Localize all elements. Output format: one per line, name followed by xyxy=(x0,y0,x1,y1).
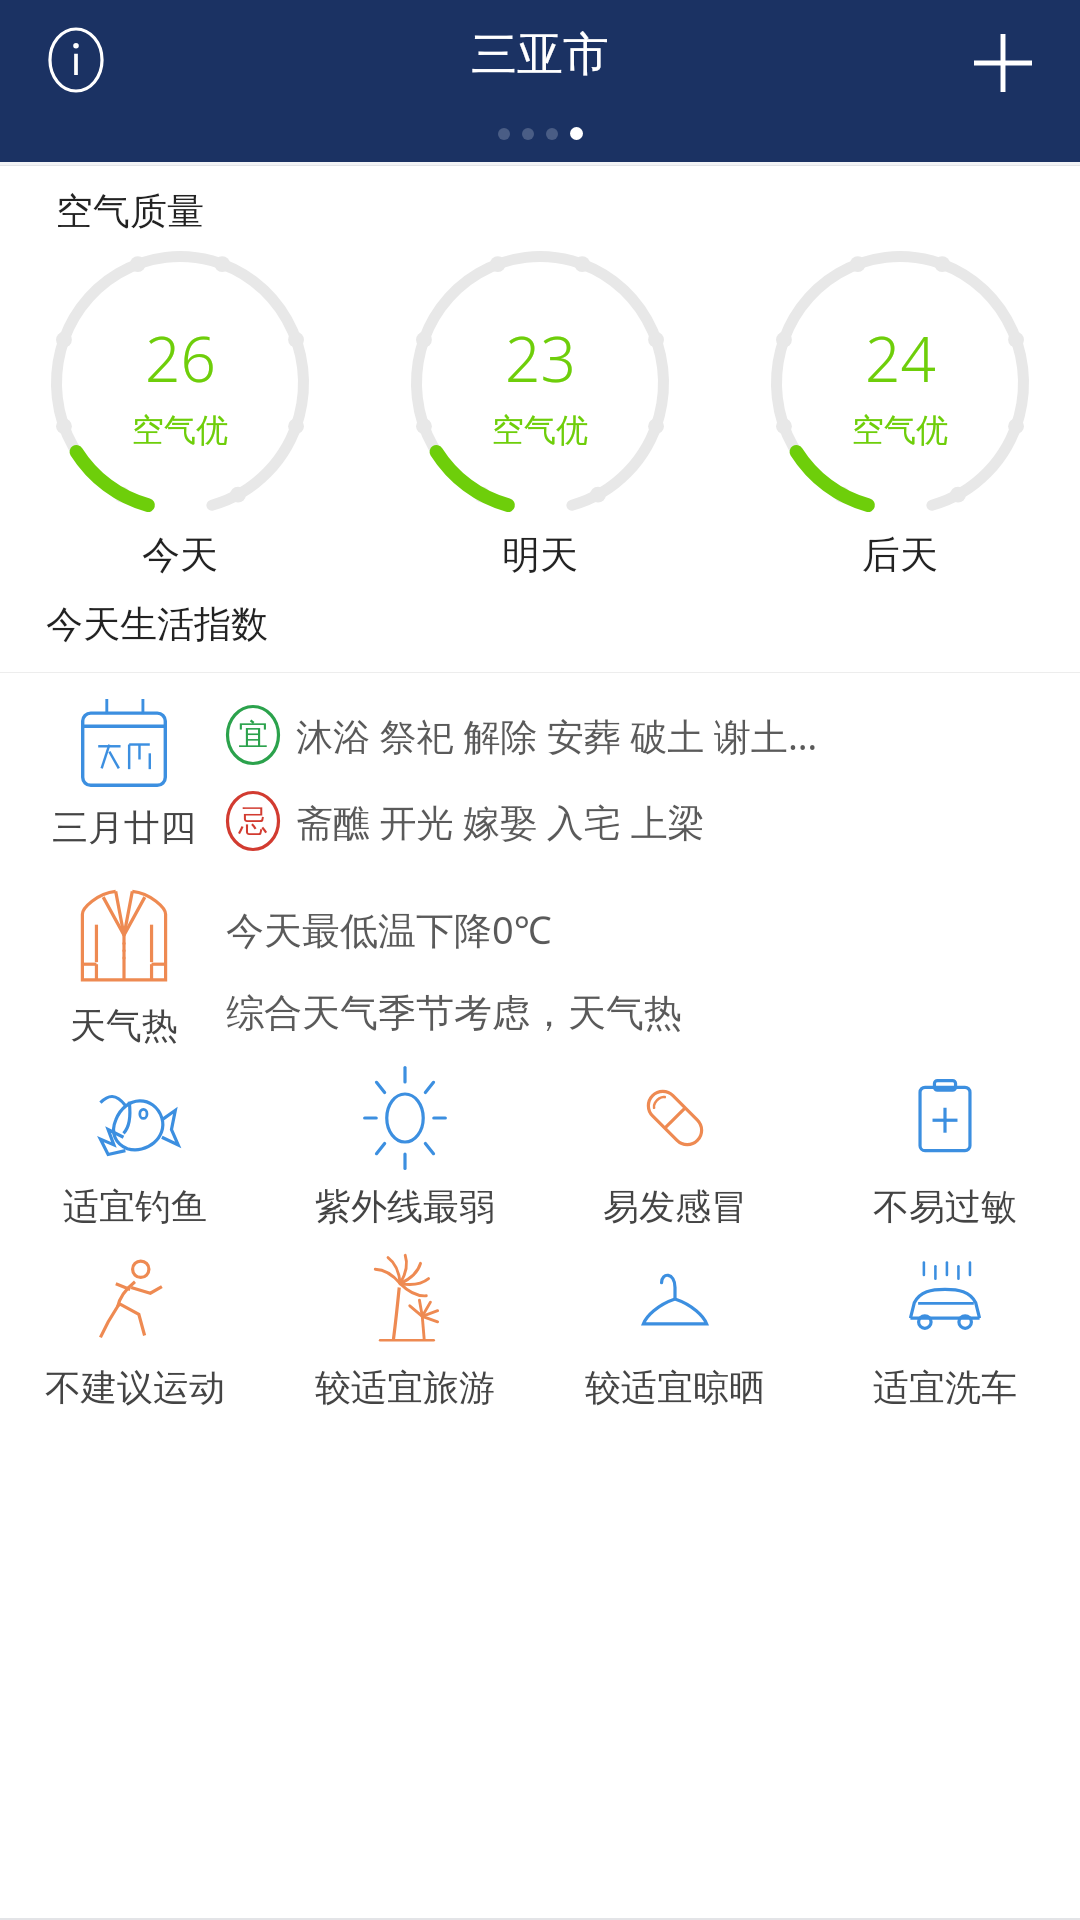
staticText: 今天最低温下降0℃ xyxy=(226,903,552,955)
button[interactable]: 23 xyxy=(360,249,720,579)
button[interactable]: 紫外线最弱 xyxy=(270,1070,540,1229)
staticText: 空气优 xyxy=(852,410,948,450)
button[interactable]: Add city xyxy=(966,26,1040,100)
staticText: 紫外线最弱 xyxy=(315,1184,495,1229)
staticText: 适宜洗车 xyxy=(873,1365,1017,1410)
button[interactable]: 26 xyxy=(0,249,360,579)
button[interactable]: 天气热 xyxy=(0,881,1080,1048)
staticText: 适宜钓鱼 xyxy=(63,1184,207,1229)
staticText: 空气优 xyxy=(132,410,228,450)
staticText: 较适宜晾晒 xyxy=(585,1365,765,1410)
staticText: 26 xyxy=(145,316,216,400)
button[interactable]: 较适宜晾晒 xyxy=(540,1251,810,1410)
button[interactable]: 易发感冒 xyxy=(540,1070,810,1229)
button[interactable]: 24 xyxy=(720,249,1080,579)
button[interactable]: 不易过敏 xyxy=(810,1070,1080,1229)
staticText: 综合天气季节考虑，天气热 xyxy=(226,989,682,1037)
staticText: 不易过敏 xyxy=(873,1184,1017,1229)
staticText: 今天生活指数 xyxy=(46,601,268,648)
staticText: 不建议运动 xyxy=(45,1365,225,1410)
staticText: 天气热 xyxy=(70,1003,178,1048)
staticText: 忌 xyxy=(238,802,268,840)
button[interactable]: Information xyxy=(38,22,114,98)
staticText: 明天 xyxy=(502,531,578,579)
button[interactable]: 较适宜旅游 xyxy=(270,1251,540,1410)
staticText: 今天 xyxy=(142,531,218,579)
button[interactable]: 适宜洗车 xyxy=(810,1251,1080,1410)
staticText: 较适宜旅游 xyxy=(315,1365,495,1410)
staticText: 空气优 xyxy=(492,410,588,450)
staticText: 三亚市 xyxy=(471,26,609,84)
staticText: 三月廿四 xyxy=(52,805,196,850)
button[interactable]: 三亚市 xyxy=(461,24,619,86)
staticText: 宜 xyxy=(238,716,268,754)
staticText: 沐浴 祭祀 解除 安葬 破土 谢土… xyxy=(296,710,818,761)
staticText: 23 xyxy=(505,316,576,400)
staticText: 空气质量 xyxy=(56,188,204,235)
button[interactable]: 三月廿四 xyxy=(0,699,1080,851)
staticText: 易发感冒 xyxy=(603,1184,747,1229)
staticText: 斋醮 开光 嫁娶 入宅 上梁 xyxy=(296,796,705,847)
staticText: 24 xyxy=(865,316,936,400)
button[interactable]: 适宜钓鱼 xyxy=(0,1070,270,1229)
staticText: 后天 xyxy=(862,531,938,579)
button[interactable]: 不建议运动 xyxy=(0,1251,270,1410)
